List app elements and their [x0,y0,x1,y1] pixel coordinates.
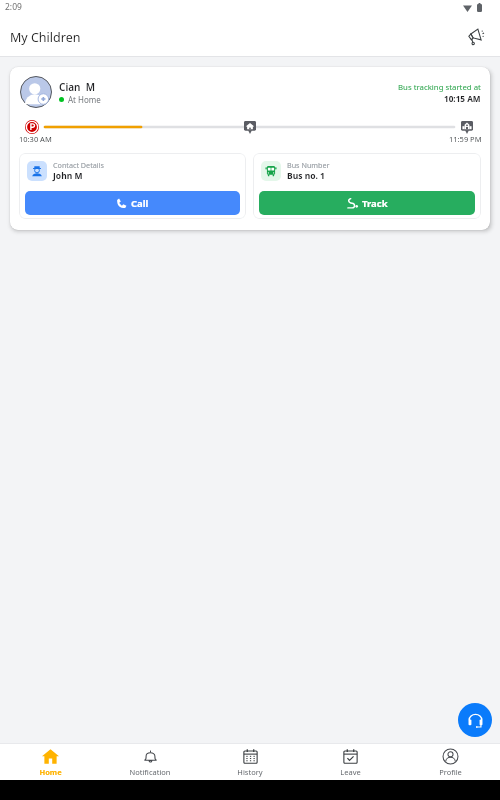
staticText: Notification [129,767,171,777]
staticText: History [237,767,263,777]
button[interactable]: Support [458,703,492,737]
staticText: At Home [68,94,101,105]
staticText: Leave [340,767,361,777]
staticText: Call [131,197,149,210]
button[interactable]: Track [259,191,475,215]
staticText: Bus tracking started at [398,82,481,93]
button[interactable]: History [200,744,300,780]
staticText: Bus Number [287,160,330,170]
staticText: 2:09 [5,1,22,13]
staticText: Cian M [59,80,95,94]
staticText: 11:59 PM [449,134,482,144]
staticText: John M [53,170,83,182]
button[interactable]: Leave [300,744,400,780]
button[interactable]: Notification [100,744,200,780]
staticText: Contact Details [53,160,104,170]
button[interactable]: Home [0,744,100,780]
button[interactable]: Announcements [461,23,489,51]
staticText: Profile [439,767,462,777]
staticText: Track [362,197,388,210]
staticText: Bus no. 1 [287,170,325,182]
staticText: Home [39,767,62,777]
button[interactable]: Profile [400,744,500,780]
button[interactable]: Call [25,191,240,215]
staticText: 10:30 AM [19,134,52,144]
staticText: My Children [10,29,81,46]
staticText: 10:15 AM [444,93,481,104]
